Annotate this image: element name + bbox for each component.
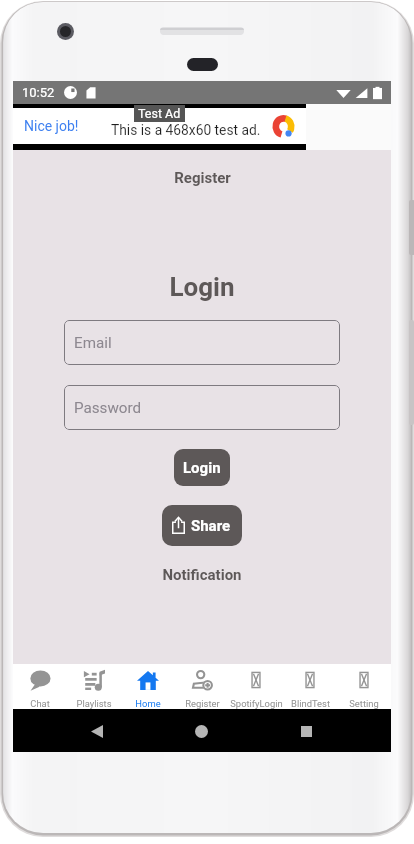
staticText: Login <box>183 459 221 477</box>
staticText: Nice job! <box>24 118 79 134</box>
staticText: Register <box>185 698 220 709</box>
button[interactable]: Home <box>181 711 221 751</box>
button[interactable]: Email <box>64 320 340 365</box>
staticText: Home <box>135 698 161 709</box>
button[interactable]: Nice job! <box>13 104 306 150</box>
button[interactable]: Register <box>174 169 231 187</box>
button[interactable]: Chat <box>13 664 67 709</box>
button[interactable]: Home <box>121 664 175 709</box>
button[interactable]: Recents <box>286 711 326 751</box>
staticText: Share <box>191 517 231 535</box>
button[interactable]: Notification <box>162 566 242 584</box>
staticText: Password <box>74 399 142 417</box>
button[interactable]: Password <box>64 385 340 430</box>
button[interactable]: BlindTest <box>283 664 337 709</box>
button[interactable]: Setting <box>337 664 391 709</box>
staticText: This is a 468x60 test ad. <box>111 122 261 138</box>
staticText: 10:52 <box>22 85 55 100</box>
staticText: SpotifyLogin <box>230 698 283 709</box>
staticText: Setting <box>349 698 379 709</box>
staticText: Chat <box>30 698 50 709</box>
button[interactable]: Playlists <box>67 664 121 709</box>
staticText: Playlists <box>76 698 112 709</box>
staticText: Login <box>169 272 235 302</box>
button[interactable]: SpotifyLogin <box>229 664 283 709</box>
staticText: Email <box>74 334 112 352</box>
button[interactable]: Register <box>175 664 229 709</box>
staticText: Test Ad <box>138 106 181 121</box>
button[interactable]: Back <box>77 711 117 751</box>
button[interactable]: Login <box>174 449 230 486</box>
staticText: BlindTest <box>291 698 330 709</box>
button[interactable]: Share <box>162 505 242 546</box>
